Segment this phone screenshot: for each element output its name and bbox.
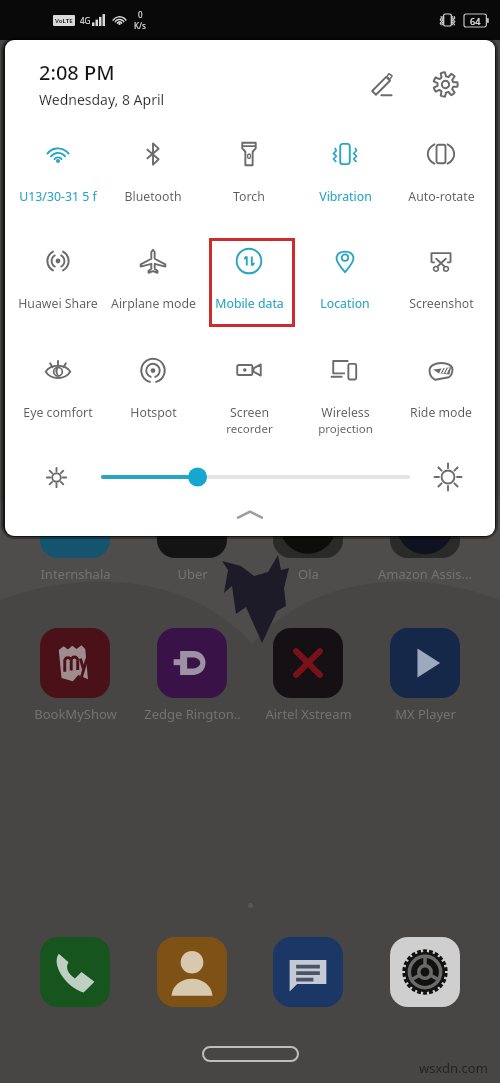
staticText: Mobile data (215, 295, 284, 312)
staticText: Bluetooth (124, 188, 182, 205)
staticText: Uber (177, 565, 208, 583)
staticText: BookMyShow (34, 705, 117, 723)
staticText: Ride mode (410, 404, 472, 421)
staticText: Location (320, 295, 370, 312)
staticText: Eye comfort (23, 404, 93, 421)
staticText: 2:08 PM (39, 59, 115, 86)
button[interactable]: Airplane mode (105, 236, 201, 336)
button[interactable]: Hotspot (105, 345, 201, 445)
button[interactable]: Screenshot (393, 236, 489, 336)
staticText: Ola (298, 565, 319, 583)
staticText: 64 (470, 15, 481, 27)
button[interactable]: Internshala (17, 488, 133, 583)
staticText: Huawei Share (18, 295, 98, 312)
staticText: Screen (230, 404, 269, 421)
staticText: Zedge Rington.. (144, 705, 241, 723)
staticText: Hotspot (130, 404, 177, 421)
staticText: Auto-rotate (408, 188, 475, 205)
button[interactable]: Zedge Rington.. (134, 628, 250, 723)
other: Collapse (238, 509, 262, 521)
staticText: Amazon Assis... (378, 565, 472, 583)
button[interactable]: Torch (201, 129, 297, 229)
button[interactable]: Airtel Xstream (250, 628, 366, 723)
button[interactable]: Vibration (297, 129, 393, 229)
button[interactable]: Location (297, 236, 393, 336)
staticText: Wednesday, 8 April (39, 90, 165, 109)
button[interactable]: Wireless (297, 345, 393, 445)
button[interactable]: BookMyShow (17, 628, 133, 723)
button[interactable]: Edit (360, 61, 406, 107)
button[interactable] (17, 937, 133, 1007)
staticText: Airtel Xstream (265, 705, 352, 723)
button[interactable]: Eye comfort (10, 345, 105, 445)
button[interactable] (99, 467, 412, 487)
button[interactable]: Amazon Assis... (367, 488, 483, 583)
button[interactable]: Increase brightness (432, 461, 464, 493)
button[interactable]: Huawei Share (10, 236, 105, 336)
staticText: Torch (233, 188, 265, 205)
button[interactable]: Screen (201, 345, 297, 445)
staticText: MX Player (395, 705, 456, 723)
staticText: Airplane mode (111, 295, 196, 312)
staticText: U13/30-31 5 f (19, 188, 97, 205)
button[interactable]: Mobile data (201, 236, 297, 336)
button[interactable]: Settings (422, 61, 468, 107)
button[interactable]: Uber (134, 488, 250, 583)
button[interactable]: Decrease brightness (43, 464, 69, 490)
staticText: recorder (226, 421, 273, 437)
staticText: VoLTE (55, 17, 73, 25)
staticText: Vibration (319, 188, 372, 205)
staticText: wsxdn.com (419, 1059, 488, 1077)
button[interactable]: MX Player (367, 628, 483, 723)
button[interactable]: Auto-rotate (393, 129, 489, 229)
button[interactable]: Bluetooth (105, 129, 201, 229)
staticText: 4G (80, 15, 91, 26)
button[interactable]: Ride mode (393, 345, 489, 445)
staticText: K/s (134, 20, 146, 31)
staticText: Screenshot (409, 295, 474, 312)
button[interactable] (134, 937, 250, 1007)
button[interactable] (250, 937, 366, 1007)
staticText: Wireless (321, 404, 370, 421)
button[interactable] (367, 937, 483, 1007)
staticText: projection (318, 421, 373, 437)
staticText: 0 (138, 9, 143, 20)
staticText: BATM (166, 650, 228, 683)
staticText: Internshala (40, 565, 111, 583)
button[interactable]: Ola (250, 488, 366, 583)
button[interactable]: U13/30-31 5 f (10, 129, 105, 229)
